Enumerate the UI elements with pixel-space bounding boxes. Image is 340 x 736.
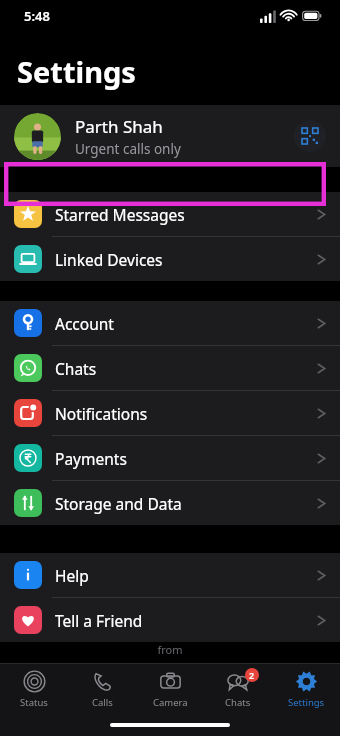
staticText: Notifications [55, 403, 317, 424]
staticText: Urgent calls only [75, 140, 181, 158]
button[interactable]: Parth Shah [0, 105, 340, 167]
staticText: Camera [153, 696, 188, 709]
staticText: 2 [249, 669, 255, 681]
button[interactable]: Settings [272, 664, 340, 714]
staticText: Linked Devices [55, 249, 317, 270]
staticText: Help [55, 565, 317, 586]
button[interactable]: Help [0, 553, 340, 597]
staticText: Settings [17, 52, 136, 91]
staticText: Chats [225, 696, 251, 709]
staticText: from [157, 642, 183, 657]
button[interactable]: Calls [68, 664, 136, 714]
staticText: Settings [288, 696, 325, 709]
button[interactable]: Notifications [0, 391, 340, 435]
button[interactable]: Tell a Friend [0, 598, 340, 642]
staticText: Account [55, 313, 317, 334]
staticText: Parth Shah [75, 115, 163, 138]
button[interactable]: 2 [204, 664, 272, 714]
staticText: Storage and Data [55, 493, 317, 514]
staticText: Status [20, 696, 48, 709]
button[interactable]: Linked Devices [0, 237, 340, 281]
staticText: Tell a Friend [55, 610, 317, 631]
button[interactable]: Account [0, 301, 340, 345]
button[interactable]: Chats [0, 346, 340, 390]
staticText: Calls [92, 696, 113, 709]
button[interactable]: QR code [294, 120, 326, 152]
staticText: Payments [55, 448, 317, 469]
staticText: Chats [55, 358, 317, 379]
button[interactable]: Camera [136, 664, 204, 714]
staticText: 5:48 [24, 7, 50, 25]
button[interactable]: Starred Messages [0, 192, 340, 236]
button[interactable]: Storage and Data [0, 481, 340, 525]
button[interactable]: Payments [0, 436, 340, 480]
staticText: Starred Messages [55, 204, 317, 225]
button[interactable]: Status [0, 664, 68, 714]
